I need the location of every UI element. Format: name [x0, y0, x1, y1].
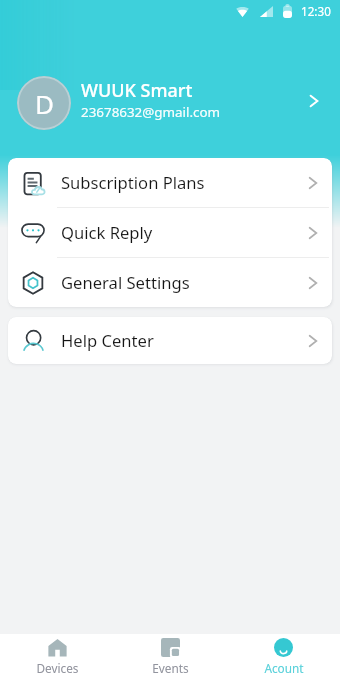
button[interactable]: Subscription Plans	[8, 158, 332, 207]
staticText: Events	[152, 660, 189, 676]
staticText: D	[35, 86, 54, 121]
staticText: 12:30	[301, 3, 331, 19]
button[interactable]: Devices	[0, 634, 114, 680]
staticText: Subscription Plans	[61, 171, 205, 194]
button[interactable]: General Settings	[8, 258, 332, 307]
staticText: 23678632@gmail.com	[81, 103, 221, 121]
staticText: Devices	[36, 660, 79, 676]
button[interactable]: Help Center	[8, 317, 332, 364]
button[interactable]: Acount	[227, 634, 340, 680]
staticText: Help Center	[61, 329, 154, 352]
staticText: Acount	[264, 660, 304, 676]
button[interactable]: D	[0, 22, 340, 158]
staticText: Quick Reply	[61, 221, 153, 244]
staticText: General Settings	[61, 271, 190, 294]
staticText: WUUK Smart	[81, 78, 193, 103]
button[interactable]: Events	[114, 634, 227, 680]
button[interactable]: Quick Reply	[8, 208, 332, 257]
